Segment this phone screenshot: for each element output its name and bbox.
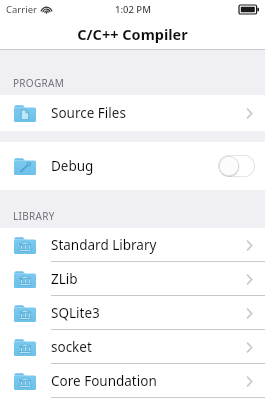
staticText: C/C++ Compiler: [77, 24, 188, 44]
staticText: 1:02 PM: [115, 3, 151, 16]
staticText: ZLib: [51, 270, 78, 288]
button[interactable]: Debug: [0, 142, 265, 190]
staticText: Source Files: [51, 104, 126, 122]
staticText: Core Foundation: [51, 372, 157, 390]
staticText: SQLite3: [51, 304, 100, 322]
button[interactable]: socket: [0, 330, 265, 364]
button[interactable]: Source Files: [0, 95, 265, 131]
staticText: socket: [51, 338, 92, 356]
staticText: PROGRAM: [13, 76, 65, 90]
staticText: Debug: [51, 157, 94, 175]
staticText: Carrier: [6, 3, 37, 16]
button[interactable]: ZLib: [0, 262, 265, 296]
staticText: LIBRARY: [13, 209, 55, 223]
button[interactable]: Debug toggle, off: [218, 155, 255, 177]
button[interactable]: SQLite3: [0, 296, 265, 330]
button[interactable]: Standard Library: [0, 228, 265, 262]
staticText: Standard Library: [51, 236, 157, 254]
button[interactable]: Core Foundation: [0, 364, 265, 398]
